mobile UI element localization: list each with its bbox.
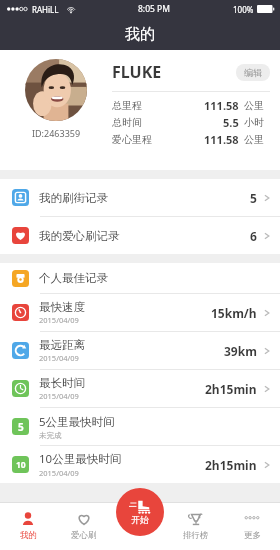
button[interactable]: 我的 [0, 502, 56, 550]
button[interactable]: 最远距离 [0, 332, 280, 369]
staticText: 15km/h [211, 305, 257, 321]
staticText: 8:05 PM [138, 3, 170, 15]
button[interactable]: Profile photo [25, 59, 87, 121]
staticText: 更多 [244, 530, 261, 541]
staticText: 10 [16, 459, 26, 471]
button[interactable]: 最快速度 [0, 294, 280, 331]
staticText: 爱心里程 [112, 133, 152, 146]
button[interactable]: 爱心刷 [56, 502, 112, 550]
staticText: 公里 [244, 99, 264, 112]
staticText: 2015/04/09 [39, 353, 79, 363]
staticText: 2015/04/09 [39, 315, 79, 325]
staticText: 总里程 [112, 99, 142, 112]
button[interactable]: 更多 [224, 502, 280, 550]
staticText: 小时 [244, 116, 264, 129]
staticText: 排行榜 [183, 530, 209, 541]
staticText: 爱心刷 [71, 530, 97, 541]
staticText: 公里 [244, 133, 264, 146]
staticText: 111.58 [204, 98, 239, 113]
staticText: 总时间 [112, 116, 142, 129]
staticText: 2h15min [205, 457, 257, 473]
staticText: 2015/04/09 [39, 468, 79, 478]
button[interactable]: 10 [0, 446, 280, 483]
staticText: 6 [250, 228, 257, 244]
button[interactable]: 编辑 [236, 64, 270, 81]
staticText: 2015/04/09 [39, 391, 79, 401]
staticText: 编辑 [244, 67, 262, 78]
staticText: ID:2463359 [32, 127, 81, 139]
staticText: 10公里最快时间 [39, 451, 122, 467]
staticText: 2h15min [205, 381, 257, 397]
staticText: FLUKE [112, 61, 162, 83]
staticText: 5 [18, 420, 24, 434]
staticText: 开始 [131, 514, 149, 525]
button[interactable]: 我的刷街记录 [0, 179, 280, 216]
staticText: 个人最佳记录 [39, 271, 108, 285]
button[interactable]: 最长时间 [0, 370, 280, 407]
staticText: 最长时间 [39, 376, 85, 390]
staticText: 我的 [20, 530, 37, 541]
staticText: 100% [233, 4, 254, 15]
staticText: 我的 [125, 25, 155, 44]
button[interactable]: 我的爱心刷记录 [0, 217, 280, 254]
button[interactable]: 5 [0, 408, 280, 445]
button[interactable]: 排行榜 [168, 502, 224, 550]
staticText: 我的爱心刷记录 [39, 229, 120, 243]
staticText: RAHiLL [32, 4, 59, 15]
staticText: 最快速度 [39, 300, 85, 314]
staticText: 111.58 [204, 132, 239, 147]
staticText: 最远距离 [39, 338, 85, 352]
staticText: 5公里最快时间 [39, 414, 115, 430]
staticText: 未完成 [39, 431, 62, 440]
button[interactable]: 开始 [116, 488, 164, 536]
staticText: 5.5 [223, 115, 239, 130]
staticText: 我的刷街记录 [39, 191, 108, 205]
staticText: 5 [250, 190, 257, 206]
staticText: 39km [224, 343, 257, 359]
